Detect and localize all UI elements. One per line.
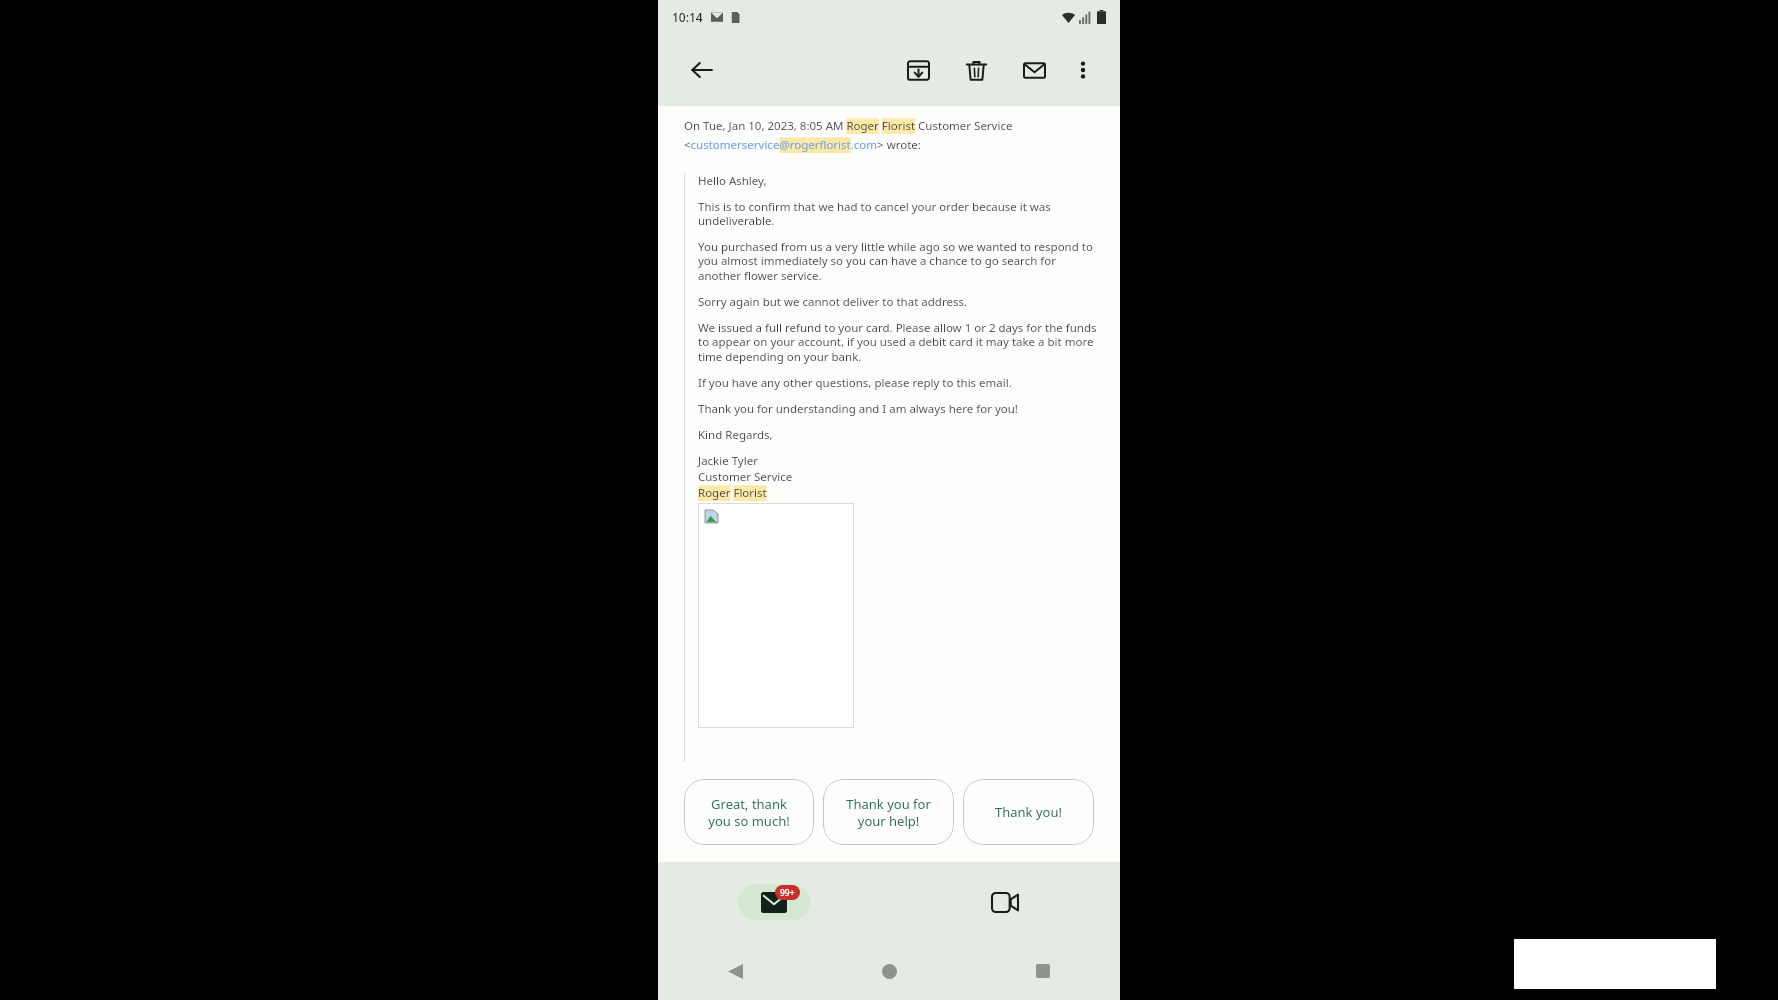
button[interactable]: Thank you for your help! bbox=[823, 779, 954, 845]
button[interactable]: Meet bbox=[969, 884, 1041, 920]
staticText: <customerservice@rogerflorist.com> wrote… bbox=[684, 137, 921, 153]
staticText: Great, thank you so much! bbox=[708, 795, 790, 830]
button[interactable]: Home bbox=[869, 951, 909, 991]
button[interactable]: Mail, 99+ unread bbox=[738, 884, 810, 920]
staticText: We issued a full refund to your card. Pl… bbox=[698, 320, 1100, 365]
staticText: If you have any other questions, please … bbox=[698, 375, 1012, 391]
staticText: 99+ bbox=[780, 887, 795, 899]
staticText: Kind Regards, bbox=[698, 427, 773, 443]
button[interactable]: Archive bbox=[900, 52, 936, 88]
staticText: Hello Ashley, bbox=[698, 173, 767, 189]
staticText: Jackie Tyler bbox=[698, 453, 758, 469]
button[interactable]: Delete bbox=[958, 52, 994, 88]
staticText: Sorry again but we cannot deliver to tha… bbox=[698, 294, 967, 310]
button[interactable]: Back bbox=[682, 50, 722, 90]
button[interactable]: Great, thank you so much! bbox=[684, 779, 814, 845]
button[interactable]: More options bbox=[1066, 53, 1100, 87]
staticText: You purchased from us a very little whil… bbox=[698, 239, 1100, 284]
staticText: Thank you for your help! bbox=[846, 795, 931, 830]
button[interactable]: Mark unread bbox=[1016, 52, 1052, 88]
staticText: Thank you for understanding and I am alw… bbox=[698, 401, 1018, 417]
staticText: This is to confirm that we had to cancel… bbox=[698, 199, 1100, 229]
staticText: On Tue, Jan 10, 2023, 8:05 AM Roger Flor… bbox=[684, 118, 1013, 134]
staticText: Roger Florist bbox=[698, 485, 767, 501]
staticText: Customer Service bbox=[698, 469, 793, 485]
staticText: 10:14 bbox=[672, 9, 703, 25]
button[interactable]: Back bbox=[715, 951, 755, 991]
button[interactable]: Recents bbox=[1023, 951, 1063, 991]
staticText: Thank you! bbox=[995, 803, 1062, 821]
button[interactable]: Thank you! bbox=[963, 779, 1094, 845]
